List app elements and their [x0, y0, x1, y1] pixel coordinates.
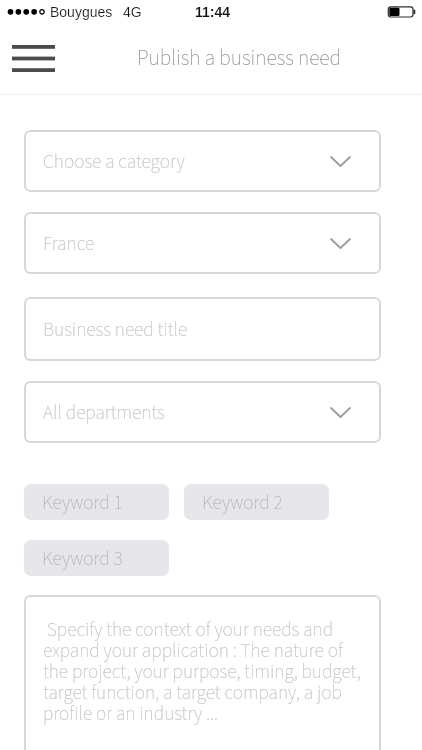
button[interactable]: All departments — [24, 381, 381, 443]
staticText: Keyword 2 — [202, 489, 283, 516]
staticText: Bouygues — [50, 4, 113, 20]
button[interactable]: Business need title — [24, 297, 381, 361]
button[interactable]: Open navigation menu — [0, 34, 66, 90]
staticText: Keyword 1 — [42, 489, 123, 516]
staticText: All departments — [43, 399, 165, 426]
button[interactable]: Choose a category — [24, 130, 381, 192]
button[interactable]: Specify the context of your needs and ex… — [24, 595, 381, 750]
staticText: France — [43, 230, 95, 257]
button[interactable]: Keyword 1 — [24, 484, 169, 520]
staticText: Keyword 3 — [42, 545, 123, 572]
staticText: 11:44 — [195, 4, 231, 20]
staticText: Business need title — [43, 316, 188, 343]
button[interactable]: Keyword 2 — [184, 484, 329, 520]
staticText: 4G — [123, 4, 142, 20]
staticText: Specify the context of your needs and ex… — [43, 616, 365, 728]
button[interactable]: France — [24, 212, 381, 274]
staticText: Choose a category — [43, 148, 185, 175]
button[interactable]: Keyword 3 — [24, 540, 169, 576]
staticText: Publish a business need — [137, 43, 342, 73]
